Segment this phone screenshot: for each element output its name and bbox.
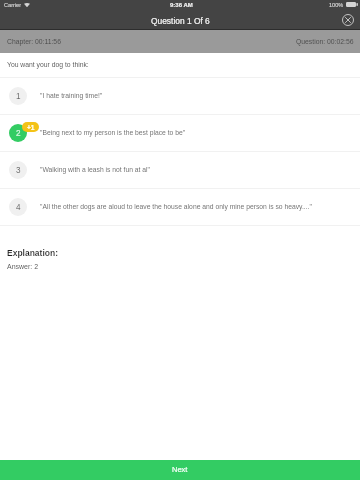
staticText: Next <box>172 465 188 473</box>
staticText: 2 <box>16 129 21 138</box>
staticText: "Walking with a leash is not fun at al" <box>40 166 352 174</box>
staticText: You want your dog to think: <box>7 61 89 69</box>
staticText: Explanation: <box>7 248 59 257</box>
staticText: 9:36 AM <box>170 2 193 9</box>
staticText: Answer: 2 <box>7 263 39 271</box>
staticText: Question 1 Of 6 <box>151 16 210 25</box>
staticText: 4 <box>16 203 21 212</box>
button[interactable]: Next <box>0 460 360 480</box>
staticText: 1 <box>16 92 21 101</box>
button[interactable]: 2 <box>0 115 360 151</box>
button[interactable]: 3 <box>0 152 360 188</box>
staticText: Chapter: 00:11:56 <box>7 38 61 46</box>
staticText: "I hate training time!" <box>40 92 352 100</box>
staticText: "All the other dogs are aloud to leave t… <box>40 203 352 211</box>
staticText: +1 <box>27 124 35 131</box>
staticText: Question: 00:02:56 <box>296 38 354 46</box>
staticText: 100% <box>329 2 344 8</box>
button[interactable]: 1 <box>0 78 360 114</box>
staticText: 3 <box>16 166 21 175</box>
staticText: "Being next to my person is the best pla… <box>40 129 352 137</box>
staticText: Carrier <box>4 2 22 8</box>
button[interactable]: 4 <box>0 189 360 225</box>
button[interactable]: Close <box>340 12 355 27</box>
